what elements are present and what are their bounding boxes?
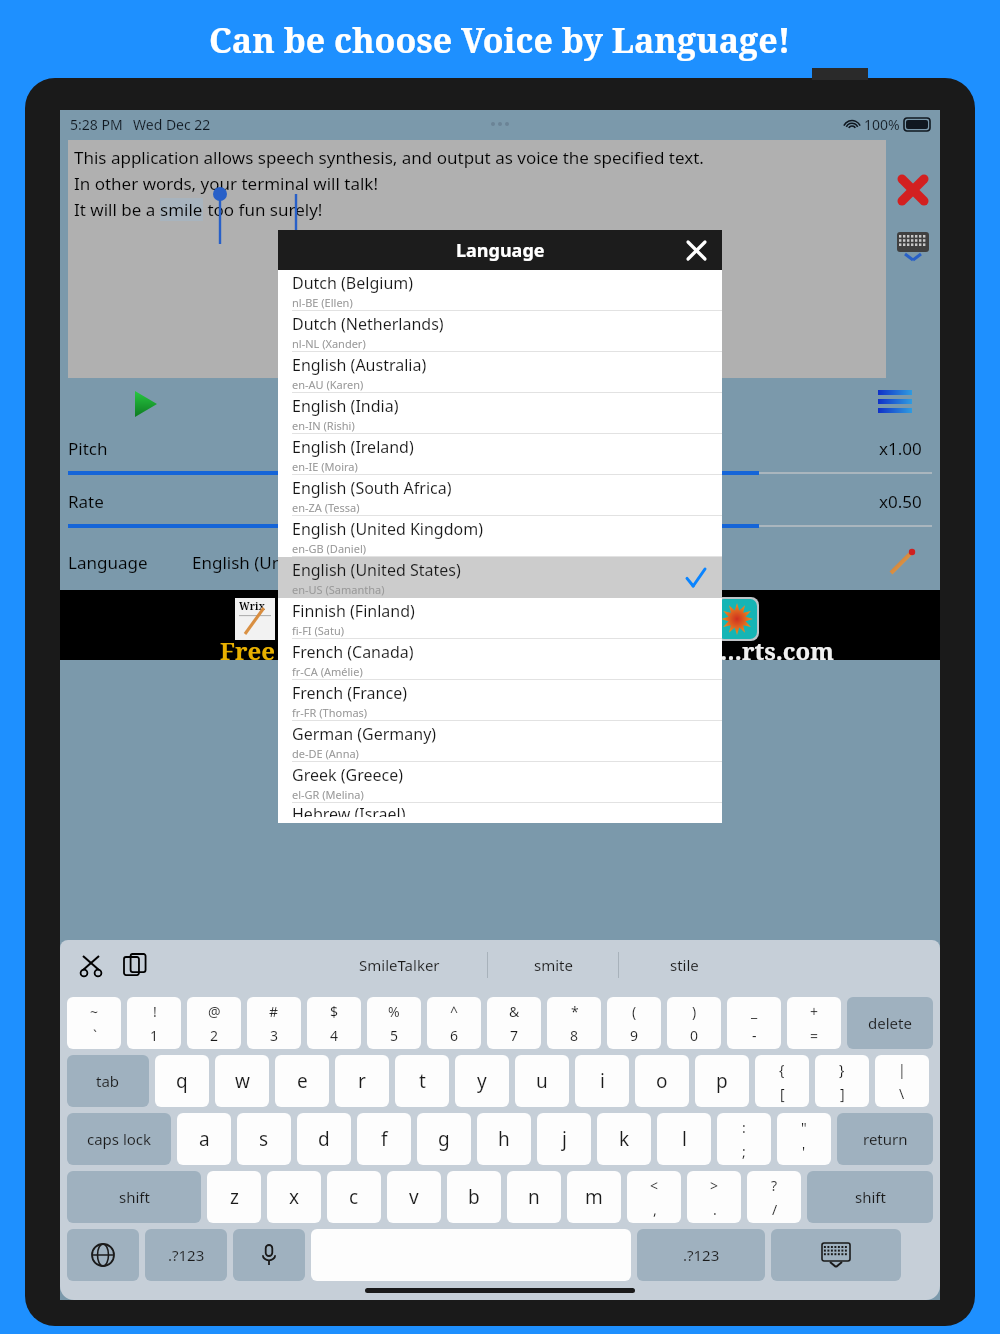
button[interactable]: English (India) — [278, 393, 722, 434]
button[interactable]: d — [297, 1113, 351, 1165]
button[interactable]: x — [267, 1171, 321, 1223]
button[interactable]: $ — [307, 997, 361, 1049]
button[interactable]: shift — [67, 1171, 201, 1223]
staticText: x — [289, 1184, 300, 1210]
button[interactable]: .?123 — [145, 1229, 227, 1281]
button[interactable]: Change keyboard language — [67, 1229, 139, 1281]
button[interactable]: German (Germany) — [278, 721, 722, 762]
button[interactable]: Play — [126, 384, 166, 424]
button[interactable]: & — [487, 997, 541, 1049]
button[interactable]: Greek (Greece) — [278, 762, 722, 803]
staticText: Rate — [68, 490, 104, 513]
button[interactable]: c — [327, 1171, 381, 1223]
staticText: x1.00 — [879, 437, 922, 460]
button[interactable]: SmileTalker — [312, 955, 487, 975]
button[interactable]: ^ — [427, 997, 481, 1049]
button[interactable]: Dictation — [233, 1229, 305, 1281]
button[interactable]: ) — [667, 997, 721, 1049]
button[interactable]: .?123 — [637, 1229, 765, 1281]
button[interactable]: o — [635, 1055, 689, 1107]
button[interactable]: @ — [187, 997, 241, 1049]
button[interactable]: n — [507, 1171, 561, 1223]
button[interactable]: English (Ireland) — [278, 434, 722, 475]
button[interactable]: a — [177, 1113, 231, 1165]
button[interactable] — [68, 469, 932, 477]
button[interactable]: Cut — [74, 948, 108, 982]
staticText: 3 — [270, 1026, 279, 1045]
button[interactable]: smite — [488, 955, 618, 975]
button[interactable]: Clear text — [891, 168, 935, 212]
button[interactable]: h — [477, 1113, 531, 1165]
button[interactable]: { — [755, 1055, 809, 1107]
button[interactable]: b — [447, 1171, 501, 1223]
button[interactable]: # — [247, 997, 301, 1049]
button[interactable]: shift — [807, 1171, 933, 1223]
button[interactable]: w — [215, 1055, 269, 1107]
button[interactable]: Hide keyboard — [897, 232, 929, 262]
button[interactable]: Hide keyboard — [771, 1229, 901, 1281]
button[interactable]: s — [237, 1113, 291, 1165]
button[interactable]: > — [687, 1171, 741, 1223]
button[interactable]: Wrix — [60, 590, 940, 660]
button[interactable]: u — [515, 1055, 569, 1107]
button[interactable]: z — [207, 1171, 261, 1223]
button[interactable]: delete — [847, 997, 933, 1049]
button[interactable]: + — [787, 997, 841, 1049]
button[interactable]: * — [547, 997, 601, 1049]
button[interactable]: < — [627, 1171, 681, 1223]
button[interactable] — [68, 522, 932, 530]
button[interactable]: f — [357, 1113, 411, 1165]
staticText: # — [269, 1002, 279, 1021]
button[interactable]: English (Australia) — [278, 352, 722, 393]
button[interactable]: tab — [67, 1055, 149, 1107]
button[interactable]: " — [777, 1113, 831, 1165]
button[interactable]: stile — [619, 955, 749, 975]
button[interactable]: k — [597, 1113, 651, 1165]
button[interactable]: v — [387, 1171, 441, 1223]
button[interactable]: y — [455, 1055, 509, 1107]
staticText: ? — [771, 1176, 778, 1195]
button[interactable]: ( — [607, 997, 661, 1049]
button[interactable]: ~ — [67, 997, 121, 1049]
button[interactable]: : — [717, 1113, 771, 1165]
button[interactable]: j — [537, 1113, 591, 1165]
button[interactable]: e — [275, 1055, 329, 1107]
staticText: \ — [899, 1084, 905, 1103]
staticText: Dutch (Belgium) — [292, 272, 414, 294]
button[interactable]: t — [395, 1055, 449, 1107]
button[interactable]: English (United Kingdom) — [278, 516, 722, 557]
button[interactable]: English (South Africa) — [278, 475, 722, 516]
button[interactable]: English (United States) — [278, 557, 722, 598]
button[interactable]: % — [367, 997, 421, 1049]
button[interactable]: caps lock — [67, 1113, 171, 1165]
staticText: English (United States) — [292, 559, 461, 581]
button[interactable]: r — [335, 1055, 389, 1107]
button[interactable]: q — [155, 1055, 209, 1107]
button[interactable]: return — [837, 1113, 933, 1165]
button[interactable]: Finnish (Finland) — [278, 598, 722, 639]
button[interactable]: Close — [680, 234, 712, 266]
button[interactable]: Dutch (Netherlands) — [278, 311, 722, 352]
button[interactable]: m — [567, 1171, 621, 1223]
staticText: Can be choose Voice by Language! — [209, 17, 791, 63]
button[interactable]: French (France) — [278, 680, 722, 721]
button[interactable]: Language — [60, 534, 940, 590]
button[interactable]: ! — [127, 997, 181, 1049]
button[interactable]: ? — [747, 1171, 801, 1223]
button[interactable]: Copy — [118, 948, 152, 982]
button[interactable]: _ — [727, 997, 781, 1049]
button[interactable]: g — [417, 1113, 471, 1165]
staticText: ; — [742, 1142, 746, 1161]
button[interactable]: i — [575, 1055, 629, 1107]
button[interactable]: } — [815, 1055, 869, 1107]
button[interactable]: p — [695, 1055, 749, 1107]
button[interactable]: Menu — [872, 383, 918, 423]
staticText: | — [898, 1060, 906, 1079]
button[interactable]: This application allows speech synthesis… — [68, 140, 886, 378]
button[interactable]: Dutch (Belgium) — [278, 270, 722, 311]
staticText: 8 — [570, 1026, 579, 1045]
button[interactable]: French (Canada) — [278, 639, 722, 680]
button[interactable]: l — [657, 1113, 711, 1165]
button[interactable]: | — [875, 1055, 929, 1107]
